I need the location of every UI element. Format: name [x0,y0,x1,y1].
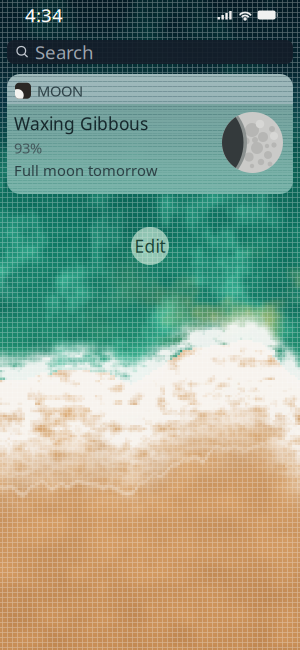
staticText: Waxing Gibbous [14,112,148,135]
staticText: 93% [14,138,42,157]
staticText: MOON [37,81,83,100]
button[interactable]: MOON [7,74,293,194]
staticText: 4:34 [25,3,63,27]
staticText: Search [35,40,94,64]
button[interactable]: Edit [131,227,169,265]
staticText: Full moon tomorrow [14,160,158,180]
button[interactable]: Search [7,40,293,64]
staticText: Edit [134,234,165,257]
